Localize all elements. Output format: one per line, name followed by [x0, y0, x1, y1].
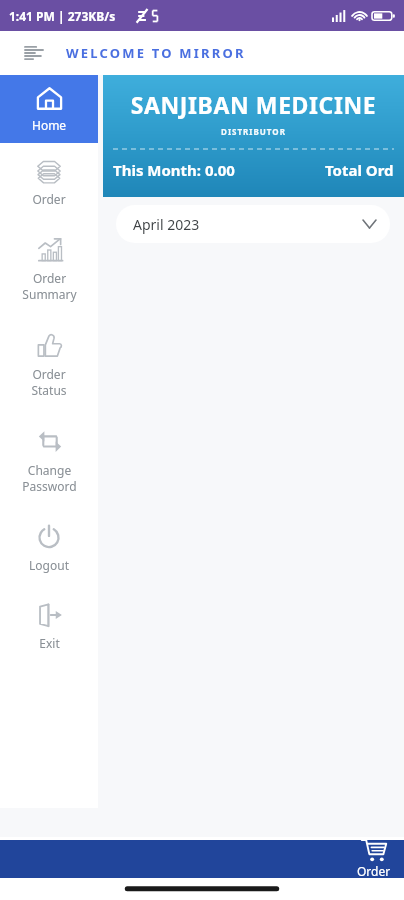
button[interactable]: Order [344, 837, 404, 881]
button[interactable]: Open navigation menu [18, 37, 50, 69]
staticText: This Month: 0.00 [113, 160, 235, 180]
staticText: Order [357, 863, 391, 879]
staticText: Logout [29, 557, 69, 573]
staticText: 1:41 PM | 273KB/s [9, 8, 116, 24]
button[interactable]: Logout [0, 509, 98, 587]
button[interactable]: April 2023 [116, 205, 390, 243]
staticText: April 2023 [133, 215, 200, 234]
button[interactable]: Change Password [0, 413, 98, 509]
staticText: Exit [39, 635, 60, 651]
button[interactable]: Order Summary [0, 221, 98, 317]
staticText: Order [32, 191, 66, 207]
button[interactable]: Order [0, 143, 98, 221]
staticText: Home [32, 117, 67, 133]
button[interactable]: Order Status [0, 317, 98, 413]
staticText: Total Ord [325, 160, 394, 180]
button[interactable]: Exit [0, 587, 98, 665]
staticText: DISTRIBUTOR [103, 126, 404, 137]
staticText: Change Password [22, 462, 77, 494]
staticText: WELCOME TO MIRROR [66, 44, 246, 62]
button[interactable]: Home [0, 75, 98, 143]
staticText: Order Summary [22, 270, 77, 302]
staticText: SANJIBAN MEDICINE [103, 89, 404, 120]
staticText: Order Status [31, 366, 67, 398]
